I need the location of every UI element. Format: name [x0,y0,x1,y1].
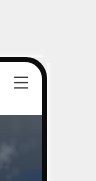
button[interactable]: Open navigation menu [9,71,33,93]
